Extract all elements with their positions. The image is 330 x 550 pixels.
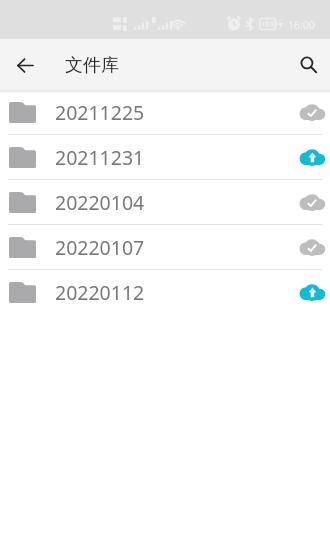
- button[interactable]: 20220112: [0, 270, 330, 314]
- staticText: 16:00: [288, 18, 315, 32]
- button[interactable]: Uploading: [298, 142, 328, 172]
- staticText: 20211231: [55, 144, 145, 171]
- button[interactable]: Synced: [298, 187, 328, 217]
- button[interactable]: 20220104: [0, 180, 330, 224]
- button[interactable]: 20211225: [0, 90, 330, 134]
- button[interactable]: Synced: [298, 97, 328, 127]
- button[interactable]: Search: [291, 48, 325, 82]
- button[interactable]: 20211231: [0, 135, 330, 179]
- button[interactable]: 20220107: [0, 225, 330, 269]
- staticText: 文件库: [65, 54, 119, 77]
- button[interactable]: Back: [9, 49, 41, 81]
- staticText: 20220112: [55, 279, 145, 306]
- staticText: 20220107: [55, 234, 145, 261]
- button[interactable]: Synced: [298, 232, 328, 262]
- staticText: 20220104: [55, 189, 145, 216]
- button[interactable]: Uploading: [298, 277, 328, 307]
- staticText: 20211225: [55, 99, 145, 126]
